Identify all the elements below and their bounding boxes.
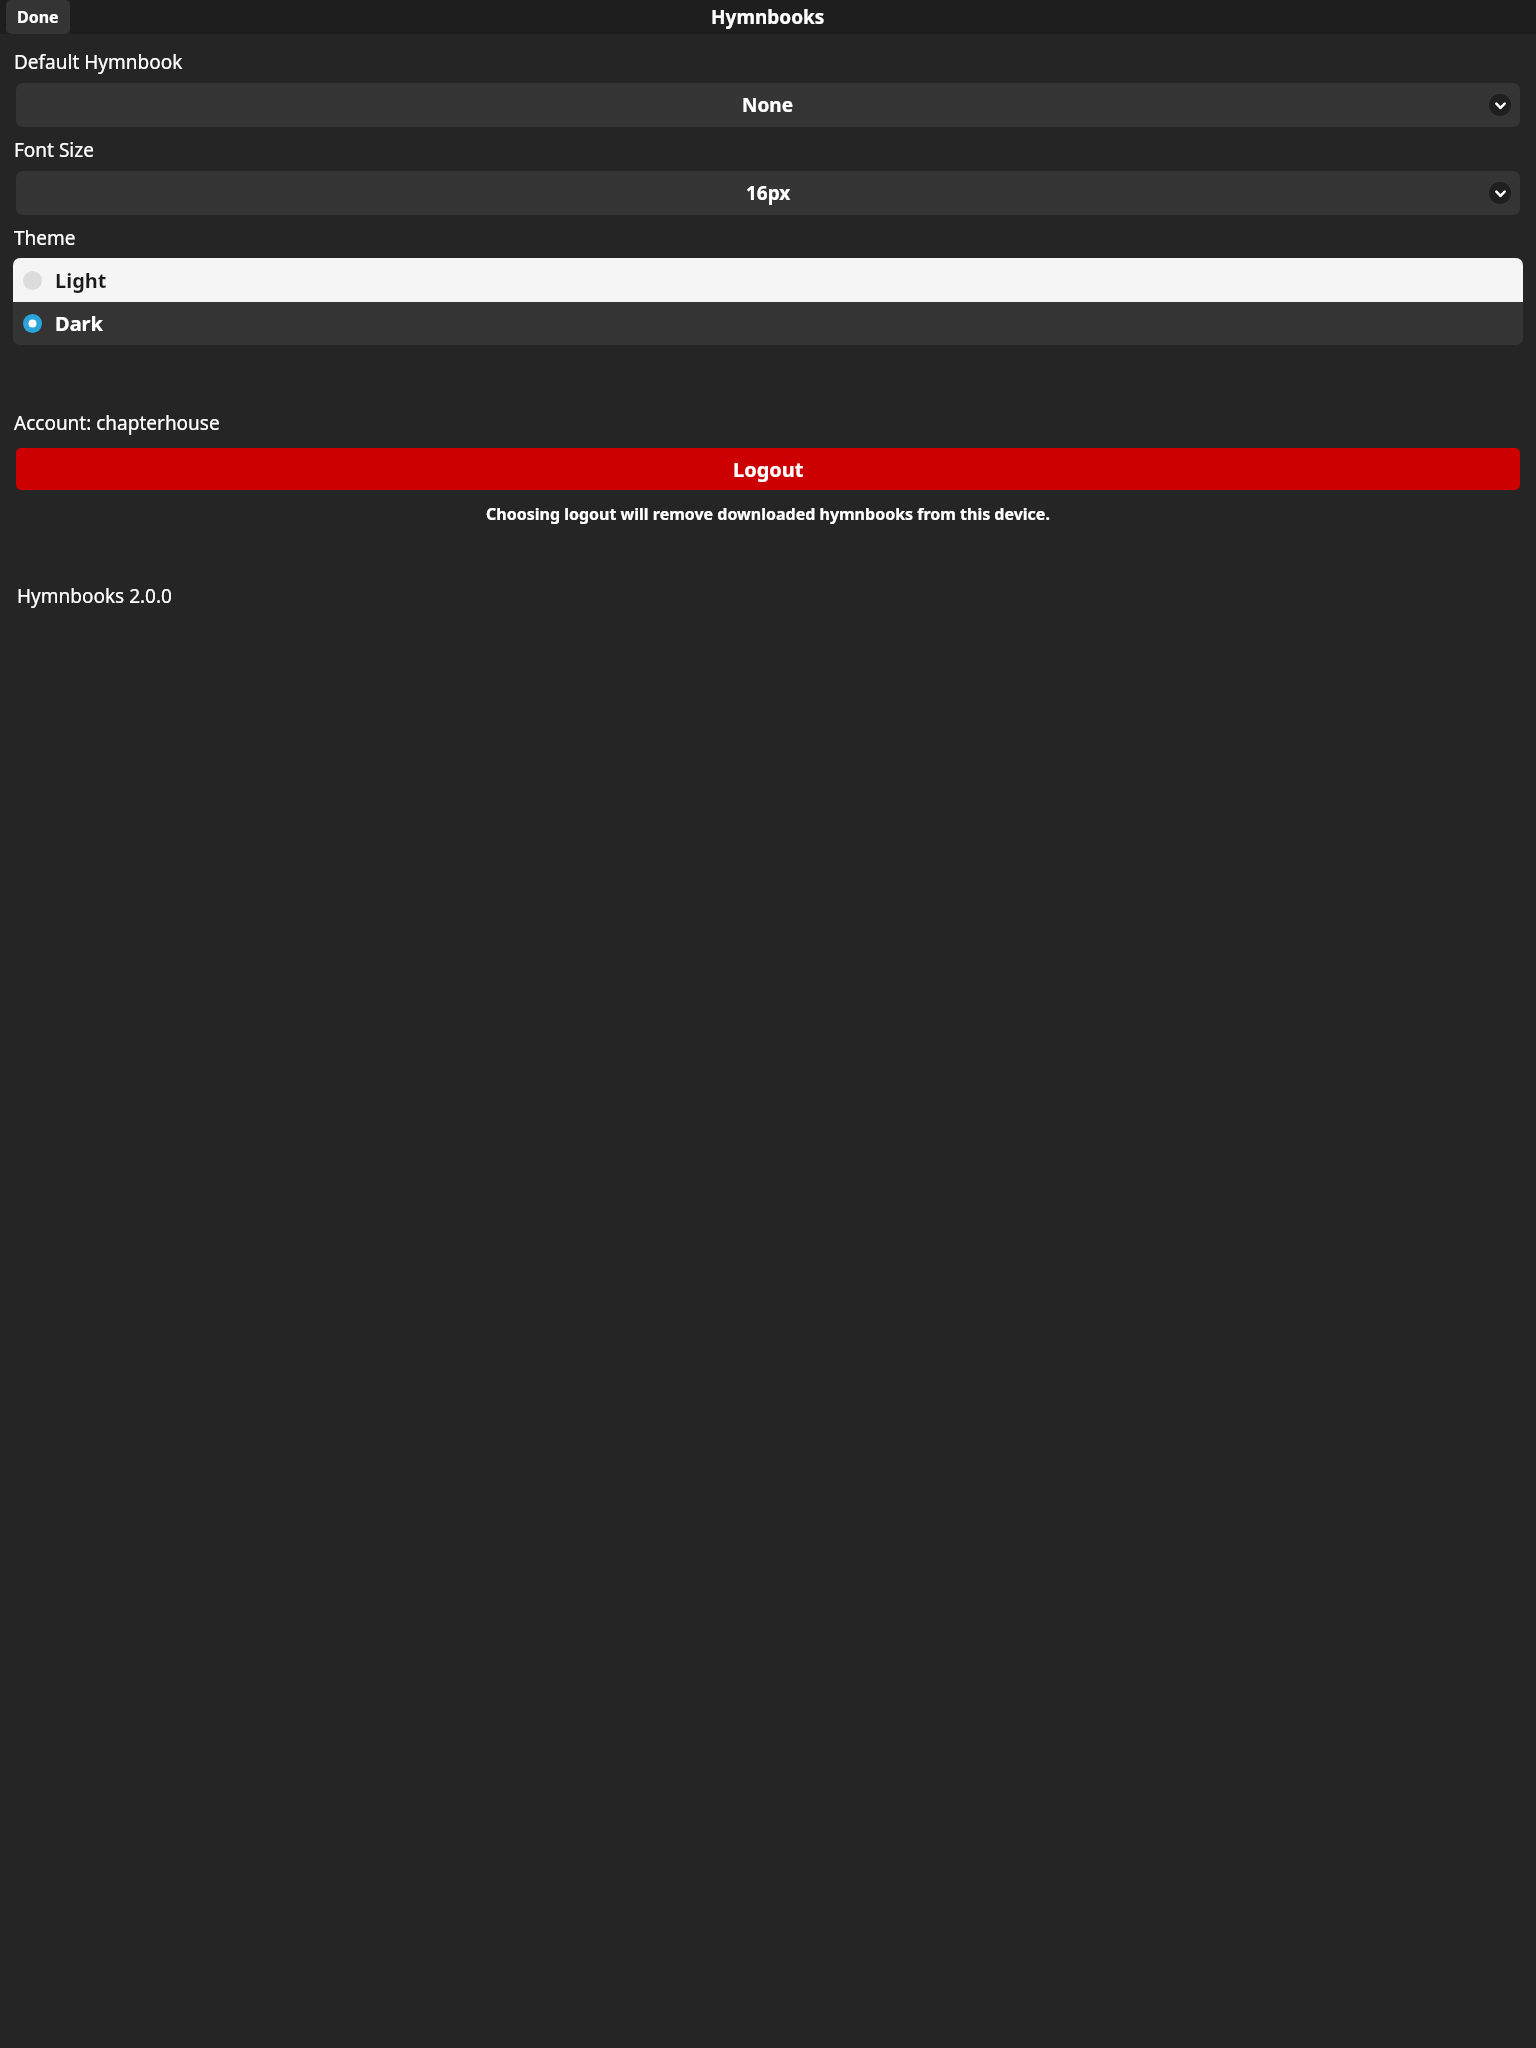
staticText: Dark bbox=[55, 310, 103, 337]
staticText: Hymnbooks bbox=[711, 4, 825, 30]
staticText: Light bbox=[55, 267, 107, 294]
button[interactable]: 16px bbox=[16, 171, 1520, 215]
staticText: Default Hymnbook bbox=[14, 49, 183, 75]
button[interactable]: None bbox=[16, 83, 1520, 127]
staticText: 16px bbox=[746, 180, 791, 206]
staticText: Account: chapterhouse bbox=[14, 410, 220, 436]
staticText: Font Size bbox=[14, 137, 94, 163]
staticText: Logout bbox=[733, 456, 804, 483]
button[interactable]: Logout bbox=[16, 448, 1520, 490]
button[interactable]: Dark bbox=[13, 302, 1523, 345]
staticText: Theme bbox=[14, 225, 76, 251]
button[interactable]: Light bbox=[13, 258, 1523, 302]
staticText: None bbox=[742, 92, 794, 118]
other: Open 16px menu bbox=[1489, 182, 1511, 204]
staticText: Done bbox=[17, 6, 59, 28]
button[interactable]: Done bbox=[6, 0, 70, 34]
other: Open None menu bbox=[1489, 94, 1511, 116]
staticText: Choosing logout will remove downloaded h… bbox=[486, 503, 1050, 525]
staticText: Hymnbooks 2.0.0 bbox=[17, 583, 172, 609]
